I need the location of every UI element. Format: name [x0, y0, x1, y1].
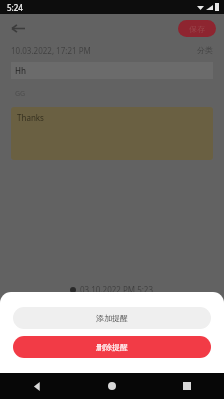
button[interactable]: Back: [0, 373, 74, 399]
staticText: 分类: [197, 45, 213, 55]
button[interactable]: 添加提醒: [13, 307, 211, 329]
button[interactable]: Home: [74, 373, 149, 399]
staticText: Thanks: [17, 112, 44, 123]
button[interactable]: Back: [6, 16, 30, 40]
button[interactable]: Hh: [11, 62, 213, 79]
staticText: GG: [15, 89, 26, 99]
staticText: Hh: [15, 65, 26, 76]
staticText: 03.10.2022 PM 5:23: [80, 284, 154, 295]
button[interactable]: 保存: [178, 20, 216, 37]
staticText: 添加提醒: [96, 313, 128, 323]
button[interactable]: 删除提醒: [13, 336, 211, 358]
staticText: 删除提醒: [96, 342, 128, 352]
button[interactable]: Recents: [149, 373, 224, 399]
staticText: 5:24: [7, 2, 23, 13]
button[interactable]: 分类: [197, 45, 213, 55]
staticText: 10.03.2022, 17:21 PM: [11, 45, 91, 56]
staticText: 保存: [189, 24, 205, 34]
